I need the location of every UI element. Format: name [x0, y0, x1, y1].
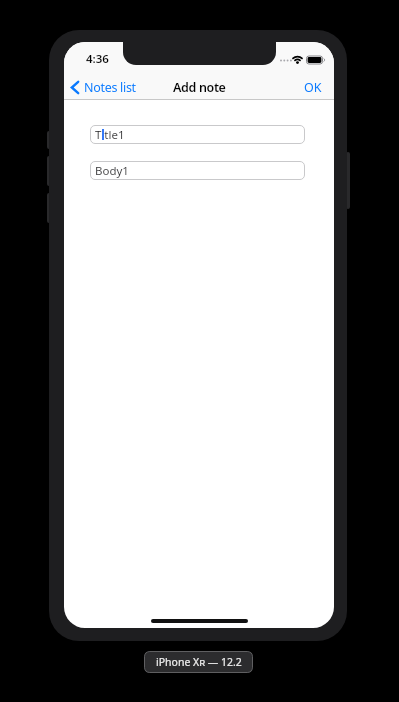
staticText: OK: [304, 79, 322, 96]
staticText: 4:36: [86, 51, 109, 66]
staticText: Notes list: [84, 79, 136, 96]
button[interactable]: OK: [294, 78, 322, 96]
button[interactable]: Body1: [90, 161, 305, 180]
staticText: Title1: [95, 127, 125, 143]
button[interactable]: Notes list: [68, 78, 163, 96]
staticText: Add note: [173, 79, 226, 96]
button[interactable]: Title1: [90, 125, 305, 144]
staticText: iPhone Xʀ — 12.2: [156, 655, 242, 669]
staticText: Body1: [95, 163, 129, 179]
